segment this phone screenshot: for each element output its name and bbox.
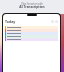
button[interactable]: [5, 29, 58, 32]
staticText: AI Transcription: [19, 5, 45, 9]
button[interactable]: [5, 26, 58, 29]
button[interactable]: Search: [51, 20, 54, 23]
button[interactable]: [5, 35, 58, 38]
staticText: Plan Smarter with: [21, 2, 43, 6]
button[interactable]: [5, 38, 58, 41]
staticText: Today: [5, 19, 16, 24]
button[interactable]: [5, 32, 58, 35]
button[interactable]: Profile: [55, 20, 58, 23]
